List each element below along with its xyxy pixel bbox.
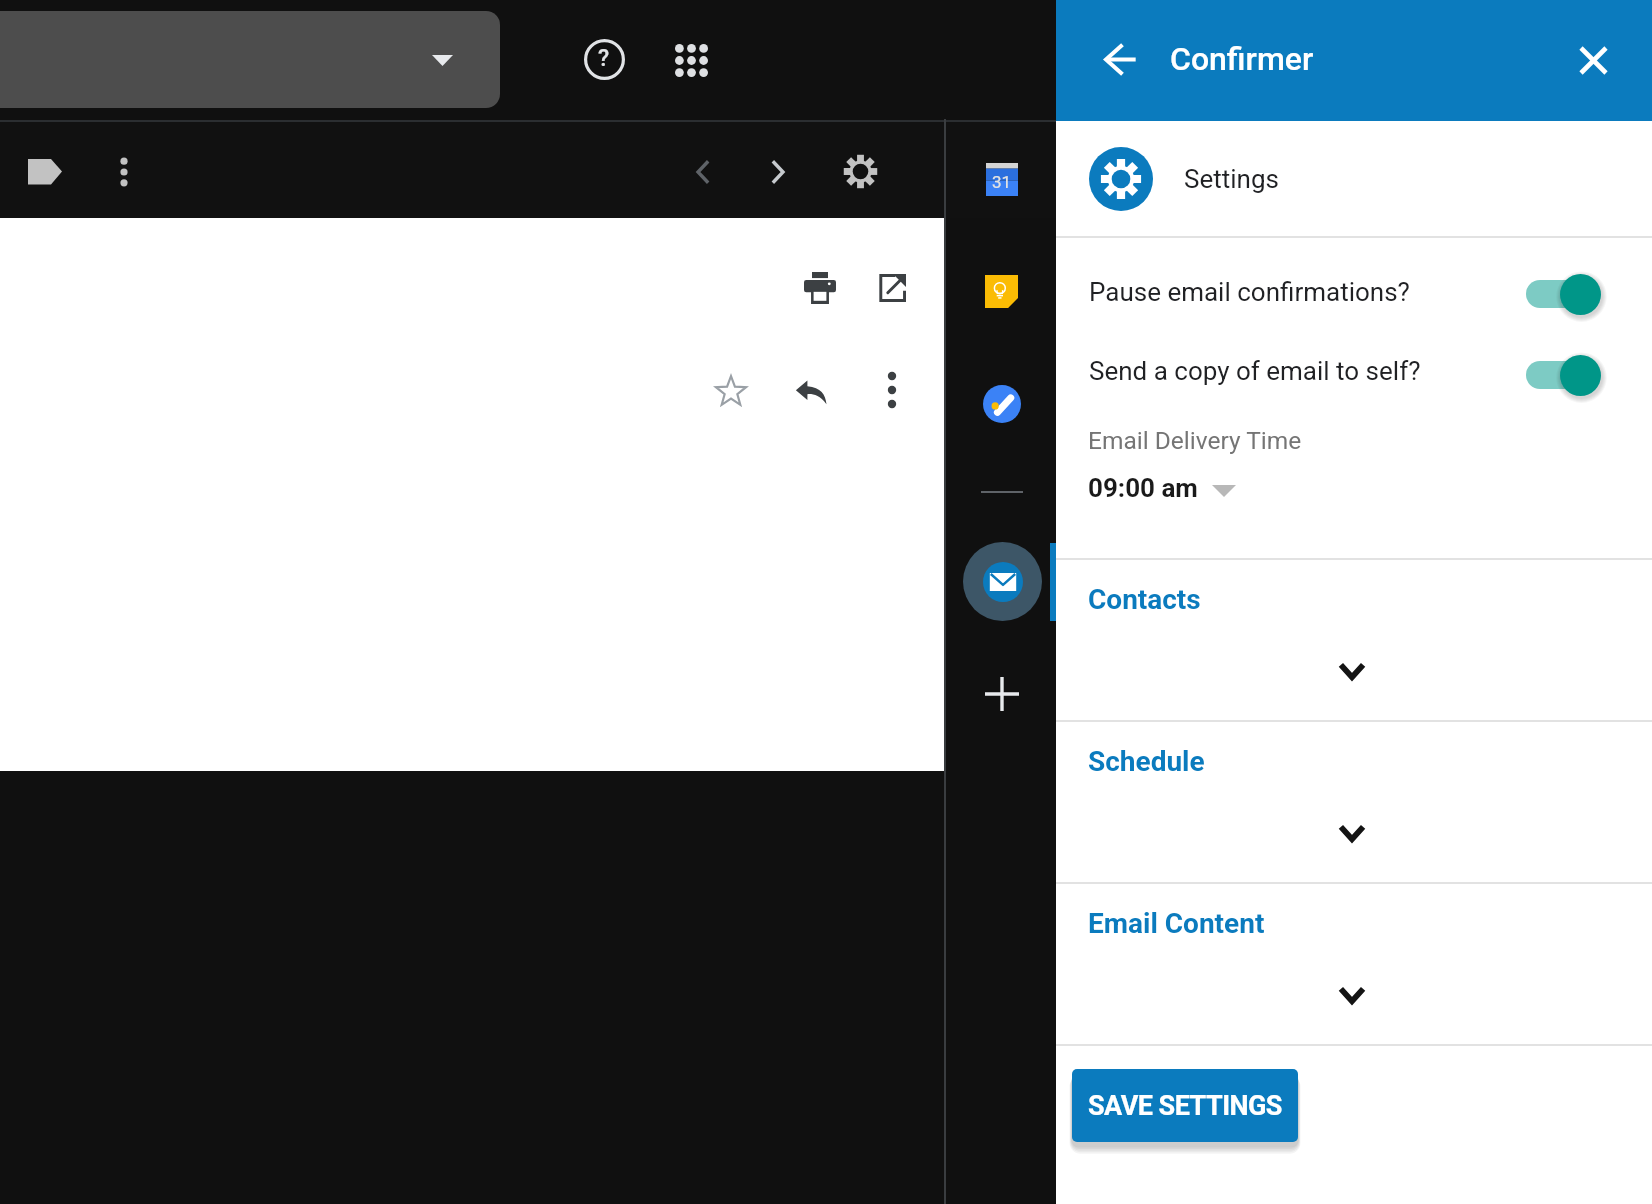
button[interactable]: Choose email delivery time [1082,462,1272,510]
staticText: Pause email confirmations? [1089,277,1410,307]
staticText: ? [598,45,610,72]
button[interactable]: Close [1564,31,1620,87]
button[interactable]: Search mail [0,11,500,108]
staticText: SAVE SETTINGS [1088,1090,1282,1122]
button[interactable]: Star [707,368,755,416]
button[interactable]: Settings [1056,121,1652,236]
button[interactable]: Google Calendar [986,163,1018,196]
staticText: Contacts [1088,583,1201,616]
button[interactable]: Open in new window [868,264,916,312]
staticText: Email Delivery Time [1088,426,1302,455]
staticText: Email Content [1088,907,1265,940]
staticText: Confirmer [1170,40,1314,78]
button[interactable]: Back [1094,33,1146,85]
button[interactable]: Contacts [1056,558,1652,720]
staticText: 09:00 am [1088,473,1198,503]
button[interactable]: Newer [678,150,722,194]
button[interactable]: Pause email confirmations [1526,271,1604,317]
button[interactable]: Support [578,33,630,85]
staticText: Settings [1184,164,1279,194]
button[interactable]: Google Tasks [983,385,1021,423]
button[interactable]: Print [796,264,844,312]
button[interactable]: Get add-ons [981,673,1023,715]
button[interactable]: More options [872,370,912,410]
button[interactable]: Labels [20,151,68,193]
button[interactable]: Schedule [1056,720,1652,882]
button[interactable]: Send a copy of email to self [1526,352,1604,398]
button[interactable]: More options [104,152,144,192]
button[interactable]: Settings [838,149,882,193]
button[interactable]: SAVE SETTINGS [1072,1069,1298,1142]
staticText: Schedule [1088,745,1205,778]
button[interactable]: Google apps [665,34,717,86]
button[interactable]: Confirmer add-on [963,542,1042,621]
button[interactable]: Email Content [1056,882,1652,1044]
staticText: Send a copy of email to self? [1089,356,1421,386]
button[interactable]: Reply [787,368,835,416]
button[interactable]: Google Keep [985,275,1018,308]
button[interactable]: Older [758,150,802,194]
staticText: 31 [992,172,1012,192]
